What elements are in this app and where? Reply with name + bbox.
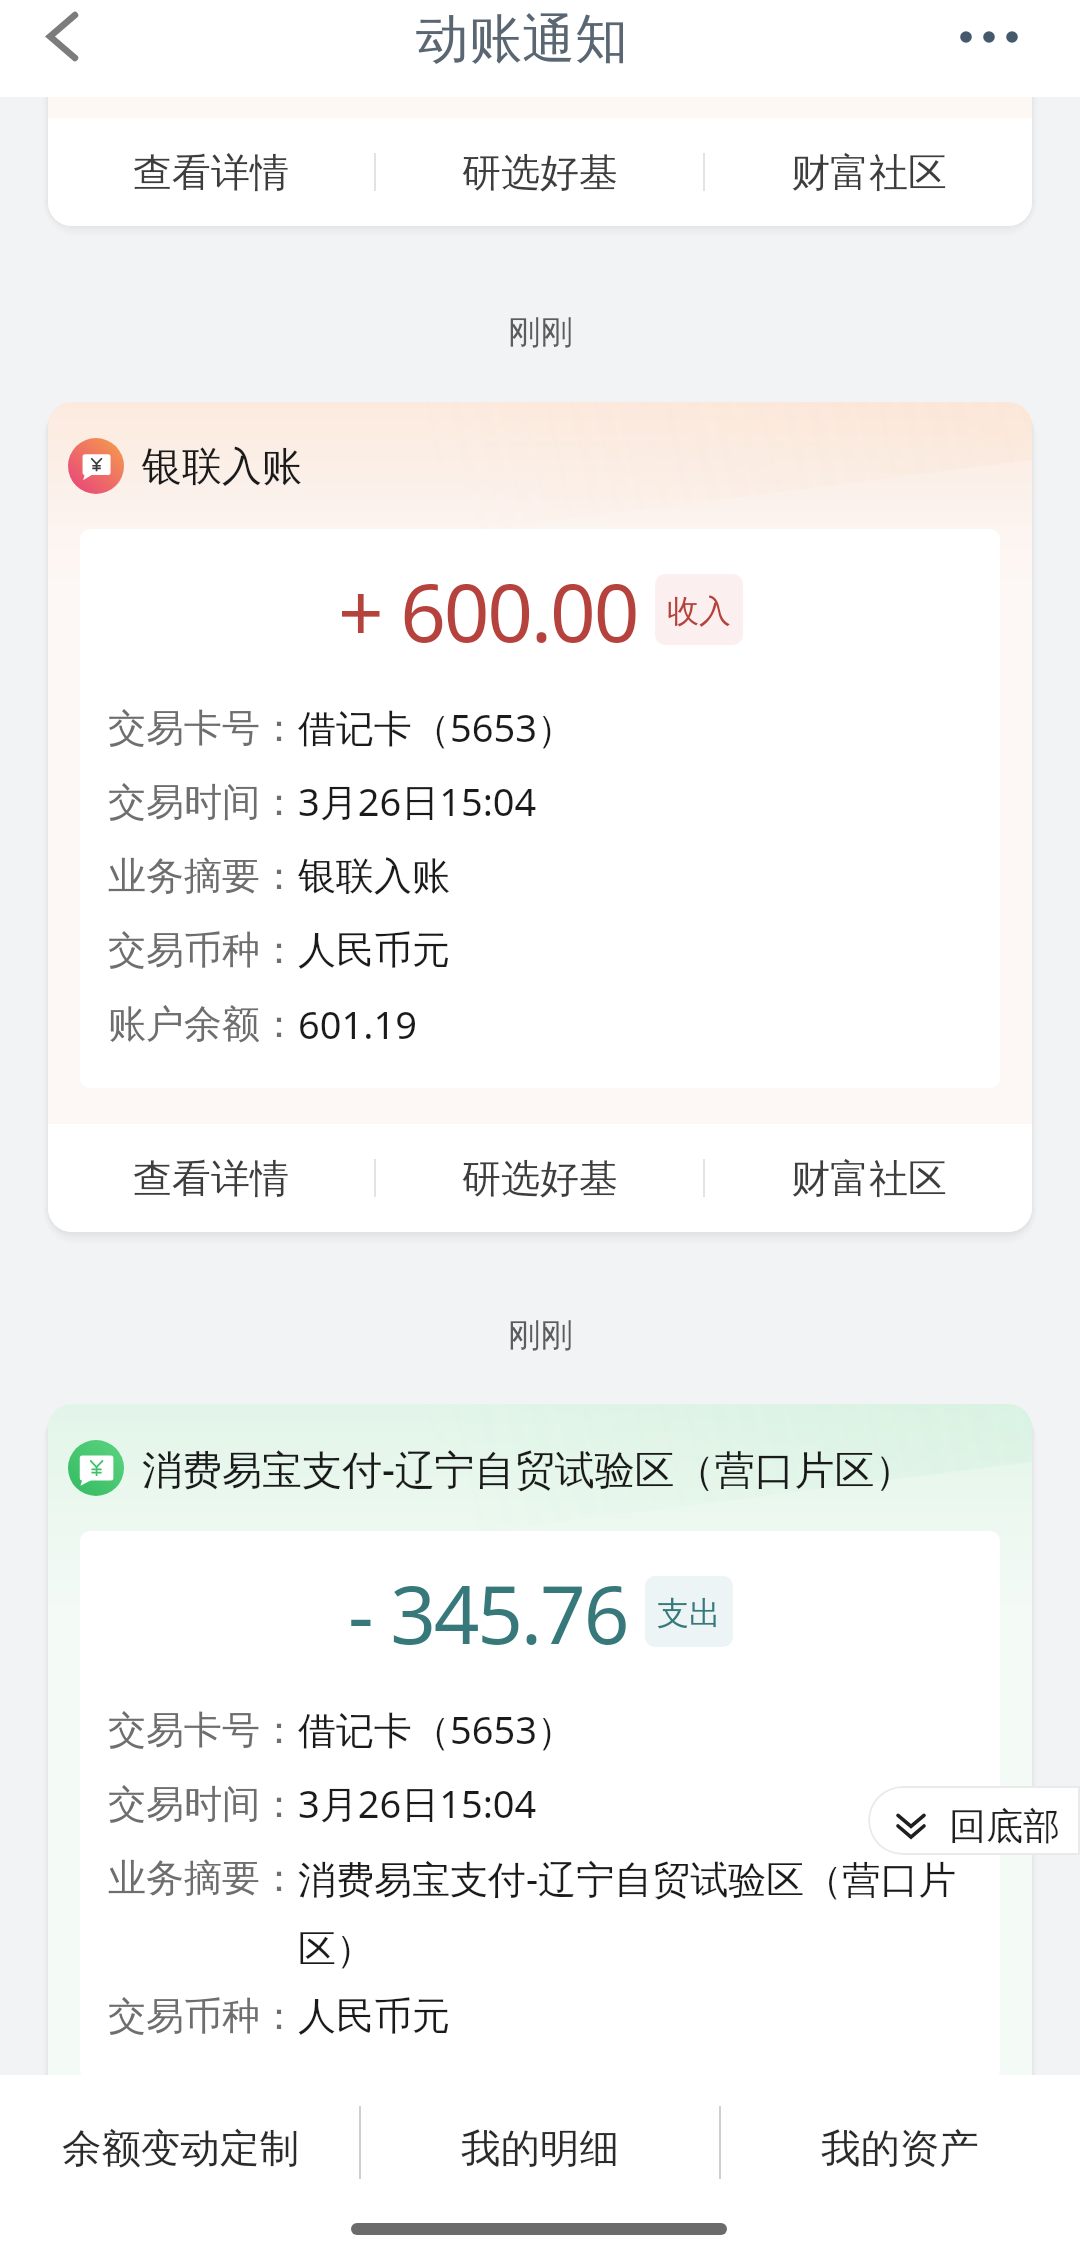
staticText: 交易币种： bbox=[108, 1988, 298, 2043]
staticText: 回底部 bbox=[949, 1799, 1060, 1853]
button[interactable]: 我的明细 bbox=[360, 2075, 720, 2219]
staticText: 查看详情 bbox=[133, 1150, 289, 1207]
staticText: 消费易宝支付-辽宁自贸试验区（营口片区） bbox=[298, 1840, 972, 1978]
button[interactable]: 财富社区 bbox=[705, 2116, 1032, 2224]
staticText: 余额变动定制 bbox=[62, 2119, 299, 2176]
staticText: 601.19 bbox=[298, 996, 417, 1051]
staticText: 交易币种： bbox=[108, 922, 298, 977]
staticText: 财富社区 bbox=[791, 2142, 947, 2199]
staticText: 业务摘要： bbox=[108, 848, 298, 903]
staticText: 交易卡号： bbox=[108, 700, 298, 755]
staticText: 交易卡号： bbox=[108, 1702, 298, 1757]
staticText: 动账通知 bbox=[416, 0, 628, 77]
button[interactable]: Back bbox=[17, 0, 105, 73]
button[interactable]: 研选好基 bbox=[376, 1124, 703, 1232]
staticText: 3月26日15:04 bbox=[298, 773, 537, 830]
staticText: 查看详情 bbox=[133, 2142, 289, 2199]
button[interactable]: 研选好基 bbox=[376, 118, 703, 226]
staticText: 账户余额： bbox=[108, 996, 298, 1051]
staticText: 3月26日15:04 bbox=[298, 1775, 537, 1832]
staticText: 人民币元 bbox=[298, 922, 450, 977]
button[interactable]: 财富社区 bbox=[705, 118, 1032, 226]
staticText: 研选好基 bbox=[462, 1150, 618, 1207]
staticText: 研选好基 bbox=[462, 2142, 618, 2199]
staticText: 研选好基 bbox=[462, 144, 618, 201]
staticText: 刚刚 bbox=[508, 308, 573, 352]
button[interactable]: 回底部 bbox=[868, 1786, 1080, 1855]
staticText: 交易时间： bbox=[108, 774, 298, 829]
button[interactable]: 查看详情 bbox=[48, 2116, 374, 2224]
staticText: 我的明细 bbox=[461, 2119, 619, 2176]
staticText: 财富社区 bbox=[791, 144, 947, 201]
staticText: 查看详情 bbox=[133, 144, 289, 201]
button[interactable]: 我的资产 bbox=[720, 2075, 1080, 2219]
staticText: 收入 bbox=[667, 587, 731, 633]
staticText: 借记卡（5653） bbox=[298, 1701, 575, 1758]
button[interactable]: 查看详情 bbox=[48, 1124, 374, 1232]
staticText: 财富社区 bbox=[791, 1150, 947, 1207]
staticText: + 600.00 bbox=[338, 551, 638, 667]
staticText: 支出 bbox=[657, 1589, 721, 1635]
staticText: 我的资产 bbox=[821, 2119, 979, 2176]
staticText: - 345.76 bbox=[348, 1553, 628, 1669]
button[interactable]: 余额变动定制 bbox=[0, 2075, 360, 2219]
button[interactable]: 查看详情 bbox=[48, 118, 374, 226]
staticText: 业务摘要： bbox=[108, 1850, 298, 1905]
staticText: 借记卡（5653） bbox=[298, 699, 575, 756]
staticText: 银联入账 bbox=[142, 437, 302, 495]
staticText: 交易时间： bbox=[108, 1776, 298, 1831]
staticText: 人民币元 bbox=[298, 1988, 450, 2043]
staticText: 刚刚 bbox=[508, 1311, 573, 1355]
button[interactable]: 财富社区 bbox=[705, 1124, 1032, 1232]
button[interactable]: More options bbox=[960, 0, 1040, 73]
staticText: 消费易宝支付-辽宁自贸试验区（营口片区） bbox=[142, 1438, 915, 1498]
button[interactable]: 研选好基 bbox=[376, 2116, 703, 2224]
staticText: 银联入账 bbox=[298, 848, 450, 903]
